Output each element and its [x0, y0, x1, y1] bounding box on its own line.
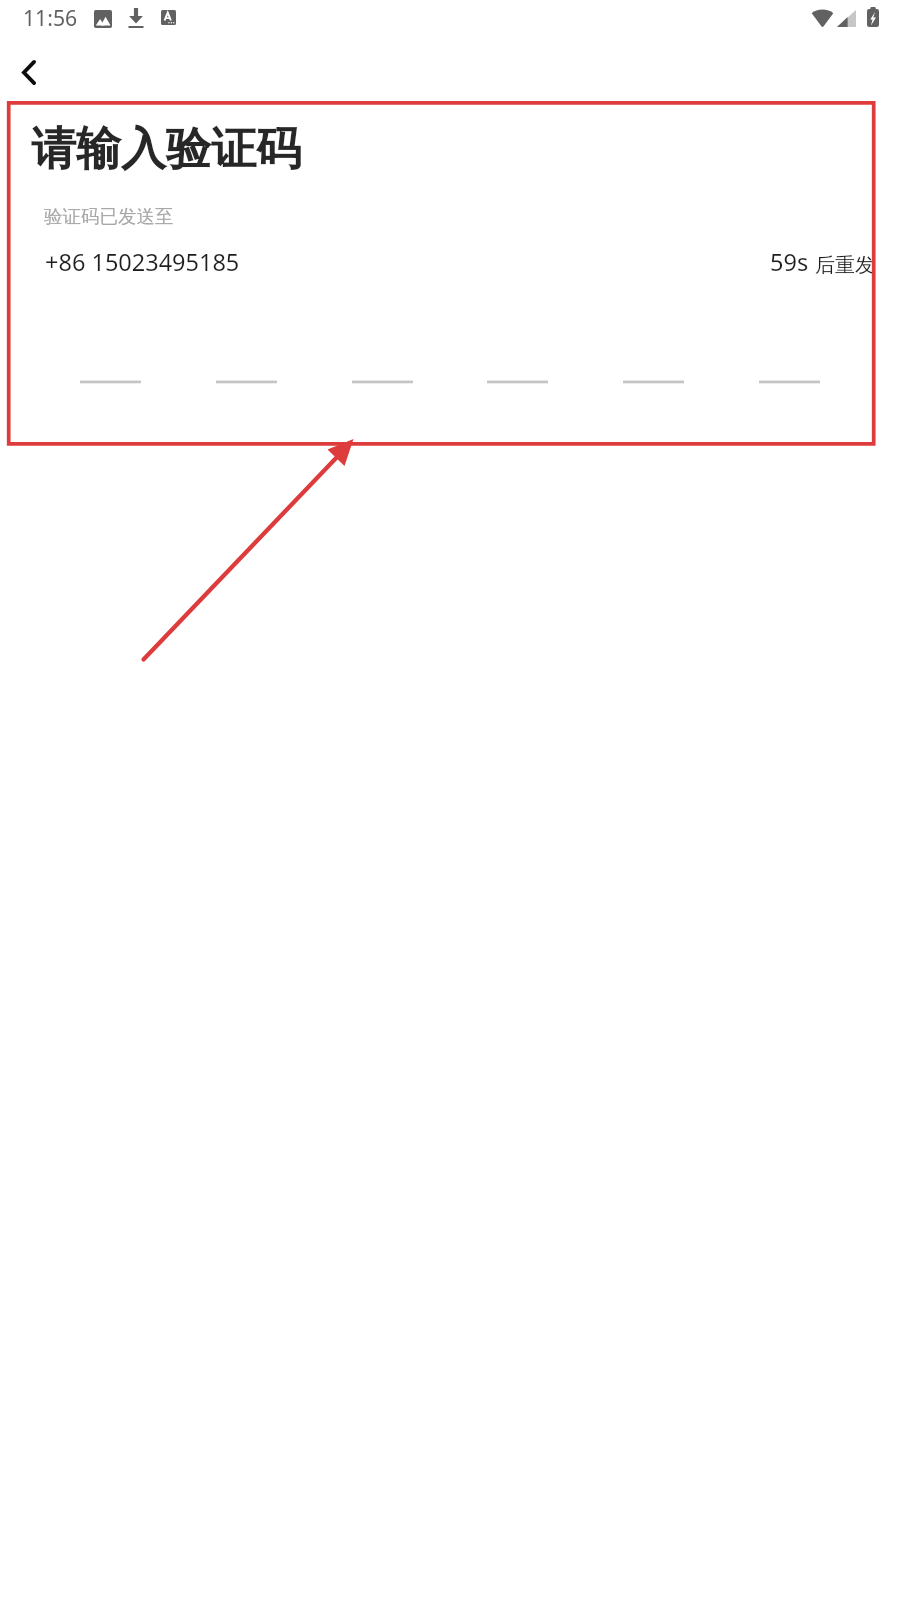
- staticText: 验证码已发送至: [44, 205, 174, 228]
- button[interactable]: 59s: [762, 238, 878, 284]
- staticText: 后重发: [815, 253, 875, 278]
- button[interactable]: Back: [0, 43, 58, 101]
- button[interactable]: Code digit 6: [759, 330, 820, 384]
- staticText: 11:56: [23, 3, 78, 32]
- staticText: 请输入验证码: [31, 121, 301, 178]
- staticText: +86 15023495185: [45, 246, 240, 278]
- button[interactable]: Code digit 2: [216, 330, 277, 384]
- button[interactable]: Code digit 4: [487, 330, 548, 384]
- button[interactable]: Code digit 5: [623, 330, 684, 384]
- staticText: 59s: [770, 246, 809, 278]
- button[interactable]: Code digit 1: [80, 330, 141, 384]
- button[interactable]: Code digit 3: [352, 330, 413, 384]
